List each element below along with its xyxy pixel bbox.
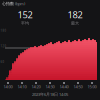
- staticText: 2023年6月18日 14:05: [32, 92, 68, 97]
- staticText: 14:40: [59, 84, 68, 89]
- staticText: 14:10: [17, 84, 26, 89]
- staticText: (bpm): [15, 1, 25, 6]
- staticText: 120: [0, 44, 6, 48]
- staticText: 15:00: [87, 84, 96, 89]
- staticText: 心拍数: [2, 1, 14, 6]
- staticText: 152: [17, 8, 32, 21]
- staticText: 14:20: [31, 84, 40, 89]
- staticText: 14:50: [73, 84, 82, 89]
- staticText: 182: [67, 8, 82, 21]
- staticText: 60: [0, 60, 4, 64]
- staticText: 14:30: [45, 84, 54, 89]
- staticText: 180: [0, 29, 6, 32]
- staticText: 最大: [71, 21, 79, 26]
- staticText: 14:00: [3, 84, 12, 89]
- staticText: 平均: [21, 21, 29, 26]
